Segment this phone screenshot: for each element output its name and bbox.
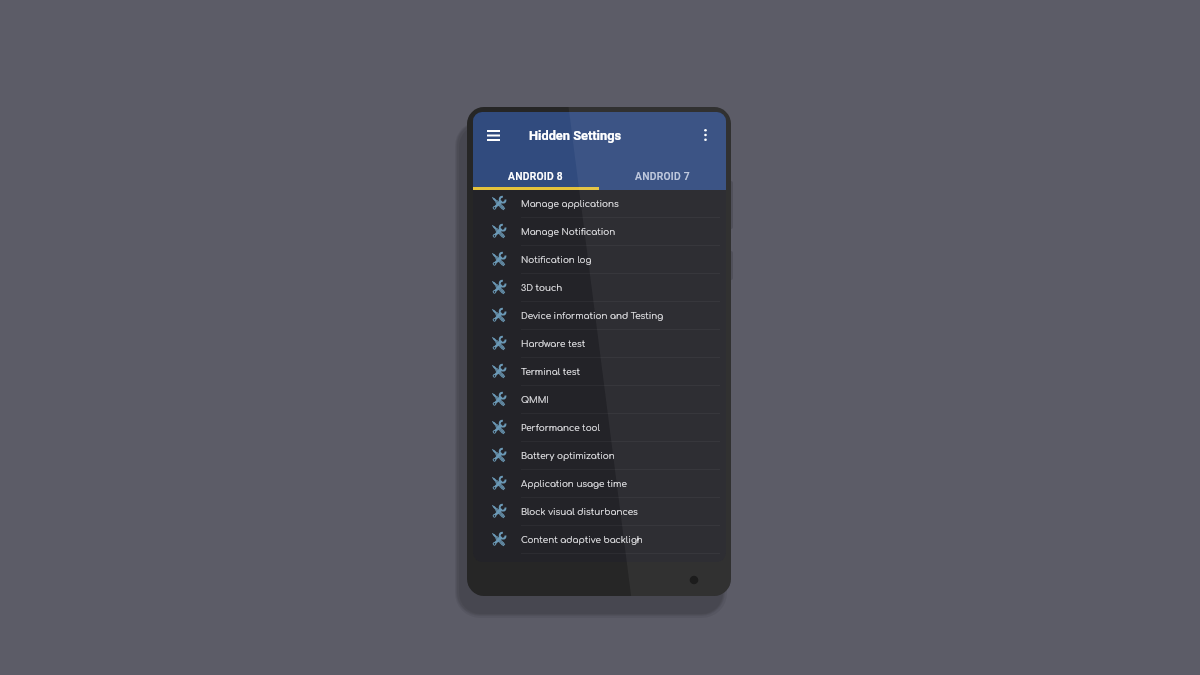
button[interactable]: Terminal test	[473, 358, 726, 386]
staticText: Manage Notification	[521, 227, 616, 237]
staticText: Notification log	[521, 255, 592, 265]
staticText: QMMI	[521, 395, 549, 405]
staticText: Performance tool	[521, 423, 601, 433]
button[interactable]: More options	[693, 123, 717, 147]
staticText: Hidden Settings	[529, 128, 622, 143]
button[interactable]: Block visual disturbances	[473, 498, 726, 526]
button[interactable]: Device information and Testing	[473, 302, 726, 330]
button[interactable]: QMMI	[473, 386, 726, 414]
staticText: Terminal test	[521, 367, 580, 377]
staticText: 3D touch	[521, 283, 563, 293]
staticText: Content adaptive backligh	[521, 535, 643, 545]
staticText: Manage applications	[521, 199, 619, 209]
staticText: Device information and Testing	[521, 311, 664, 321]
staticText: Battery optimization	[521, 451, 615, 461]
button[interactable]: ANDROID 7	[599, 158, 726, 187]
button[interactable]: Content adaptive backligh	[473, 526, 726, 554]
button[interactable]: Manage Notification	[473, 218, 726, 246]
button[interactable]: Notification log	[473, 246, 726, 274]
button[interactable]: Application usage time	[473, 470, 726, 498]
button[interactable]: 3D touch	[473, 274, 726, 302]
staticText: Application usage time	[521, 479, 627, 489]
button[interactable]: Performance tool	[473, 414, 726, 442]
button[interactable]: Open navigation menu	[480, 122, 506, 148]
staticText: ANDROID 8	[508, 170, 564, 182]
staticText: Block visual disturbances	[521, 507, 638, 517]
staticText: ANDROID 7	[635, 170, 691, 182]
button[interactable]: Hardware test	[473, 330, 726, 358]
staticText: Hardware test	[521, 339, 586, 349]
button[interactable]: Manage applications	[473, 190, 726, 218]
button[interactable]: ANDROID 8	[473, 158, 599, 187]
button[interactable]: Battery optimization	[473, 442, 726, 470]
